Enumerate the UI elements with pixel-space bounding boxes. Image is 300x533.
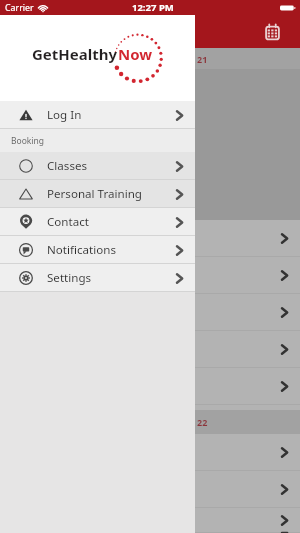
button[interactable] [0,368,300,405]
staticText: Classes [47,158,88,174]
button[interactable] [0,434,300,471]
button[interactable] [0,508,300,533]
button[interactable]: Contact [0,208,195,236]
button[interactable] [0,220,300,257]
staticText: Personal Training [47,186,142,202]
staticText: Notifications [47,242,116,258]
button[interactable] [0,257,300,294]
staticText: Contact [47,214,89,230]
staticText: 21 [197,53,208,65]
staticText: 12:27 PM [132,1,174,14]
button[interactable] [0,471,300,508]
button[interactable]: Notifications [0,236,195,264]
button[interactable] [0,331,300,368]
staticText: Booking [11,135,45,147]
staticText: Settings [47,270,92,286]
staticText: 22 [197,416,208,428]
button[interactable]: Settings [0,264,195,292]
button[interactable]: Personal Training [0,180,195,208]
button[interactable]: Classes [0,152,195,180]
staticText: Log In [47,107,82,123]
button[interactable] [0,294,300,331]
button[interactable]: Log In [0,101,195,129]
button[interactable]: Calendar [261,21,283,43]
staticText: Now [118,44,153,64]
staticText: GetHealthy [32,44,118,64]
staticText: Carrier [5,2,34,14]
